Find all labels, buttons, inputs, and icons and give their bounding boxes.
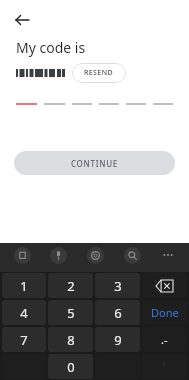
button[interactable]: 0 [48,354,93,379]
staticText: 7 [20,331,28,349]
staticText: 5 [67,304,75,322]
button[interactable]: 7 [2,327,46,352]
button[interactable]: 6 [95,300,140,325]
button[interactable]: RESEND [72,63,126,83]
button[interactable]: 8 [48,327,93,352]
staticText: ' [163,360,166,374]
staticText: Done [151,305,179,320]
button[interactable]: Back [8,6,36,34]
staticText: 0 [67,358,75,376]
button[interactable]: .- [142,327,187,352]
button[interactable]: Done [142,300,187,325]
staticText: CONTINUE [71,158,118,169]
button[interactable]: More options [151,243,185,267]
button[interactable]: 1 [2,273,46,298]
staticText: RESEND [84,68,114,78]
staticText: 8 [67,331,75,349]
button[interactable]: 2 [48,273,93,298]
button[interactable]: Settings [77,243,114,267]
button[interactable]: Backspace [142,273,187,298]
staticText: 4 [20,304,28,322]
staticText: 3 [114,277,122,295]
staticText: 2 [67,277,75,295]
staticText: 6 [114,304,122,322]
button[interactable]: Voice input [40,243,77,267]
staticText: .- [161,332,168,347]
button[interactable]: 3 [95,273,140,298]
staticText: 9 [114,331,122,349]
button[interactable]: Search [114,243,151,267]
staticText: 1 [20,277,28,295]
button[interactable]: Clipboard [4,243,40,267]
button[interactable]: 9 [95,327,140,352]
button[interactable]: CONTINUE [14,151,175,175]
button[interactable]: 5 [48,300,93,325]
staticText: My code is [16,38,86,57]
button[interactable]: 4 [2,300,46,325]
